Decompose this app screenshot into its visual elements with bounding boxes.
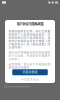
staticText: 用户协议与隐私政策 <box>16 22 43 26</box>
button[interactable]: 不同意并退出 <box>21 75 39 84</box>
staticText: 不同意并退出 <box>21 77 39 81</box>
staticText: 感谢您使用本应用！我们非常重视您的个人信息和隐私保护，在您使用我们的产品或服务前… <box>8 29 50 49</box>
button[interactable]: 同意并继续 <box>12 69 48 75</box>
staticText: 我们会严格按照条款约定处理您的个人信息，并采取安全措施予以保护。 <box>8 50 50 61</box>
staticText: 同意并继续 <box>22 70 37 74</box>
staticText: 如您同意，请点击下方按钮开始接受我们的服务。 <box>8 62 50 69</box>
